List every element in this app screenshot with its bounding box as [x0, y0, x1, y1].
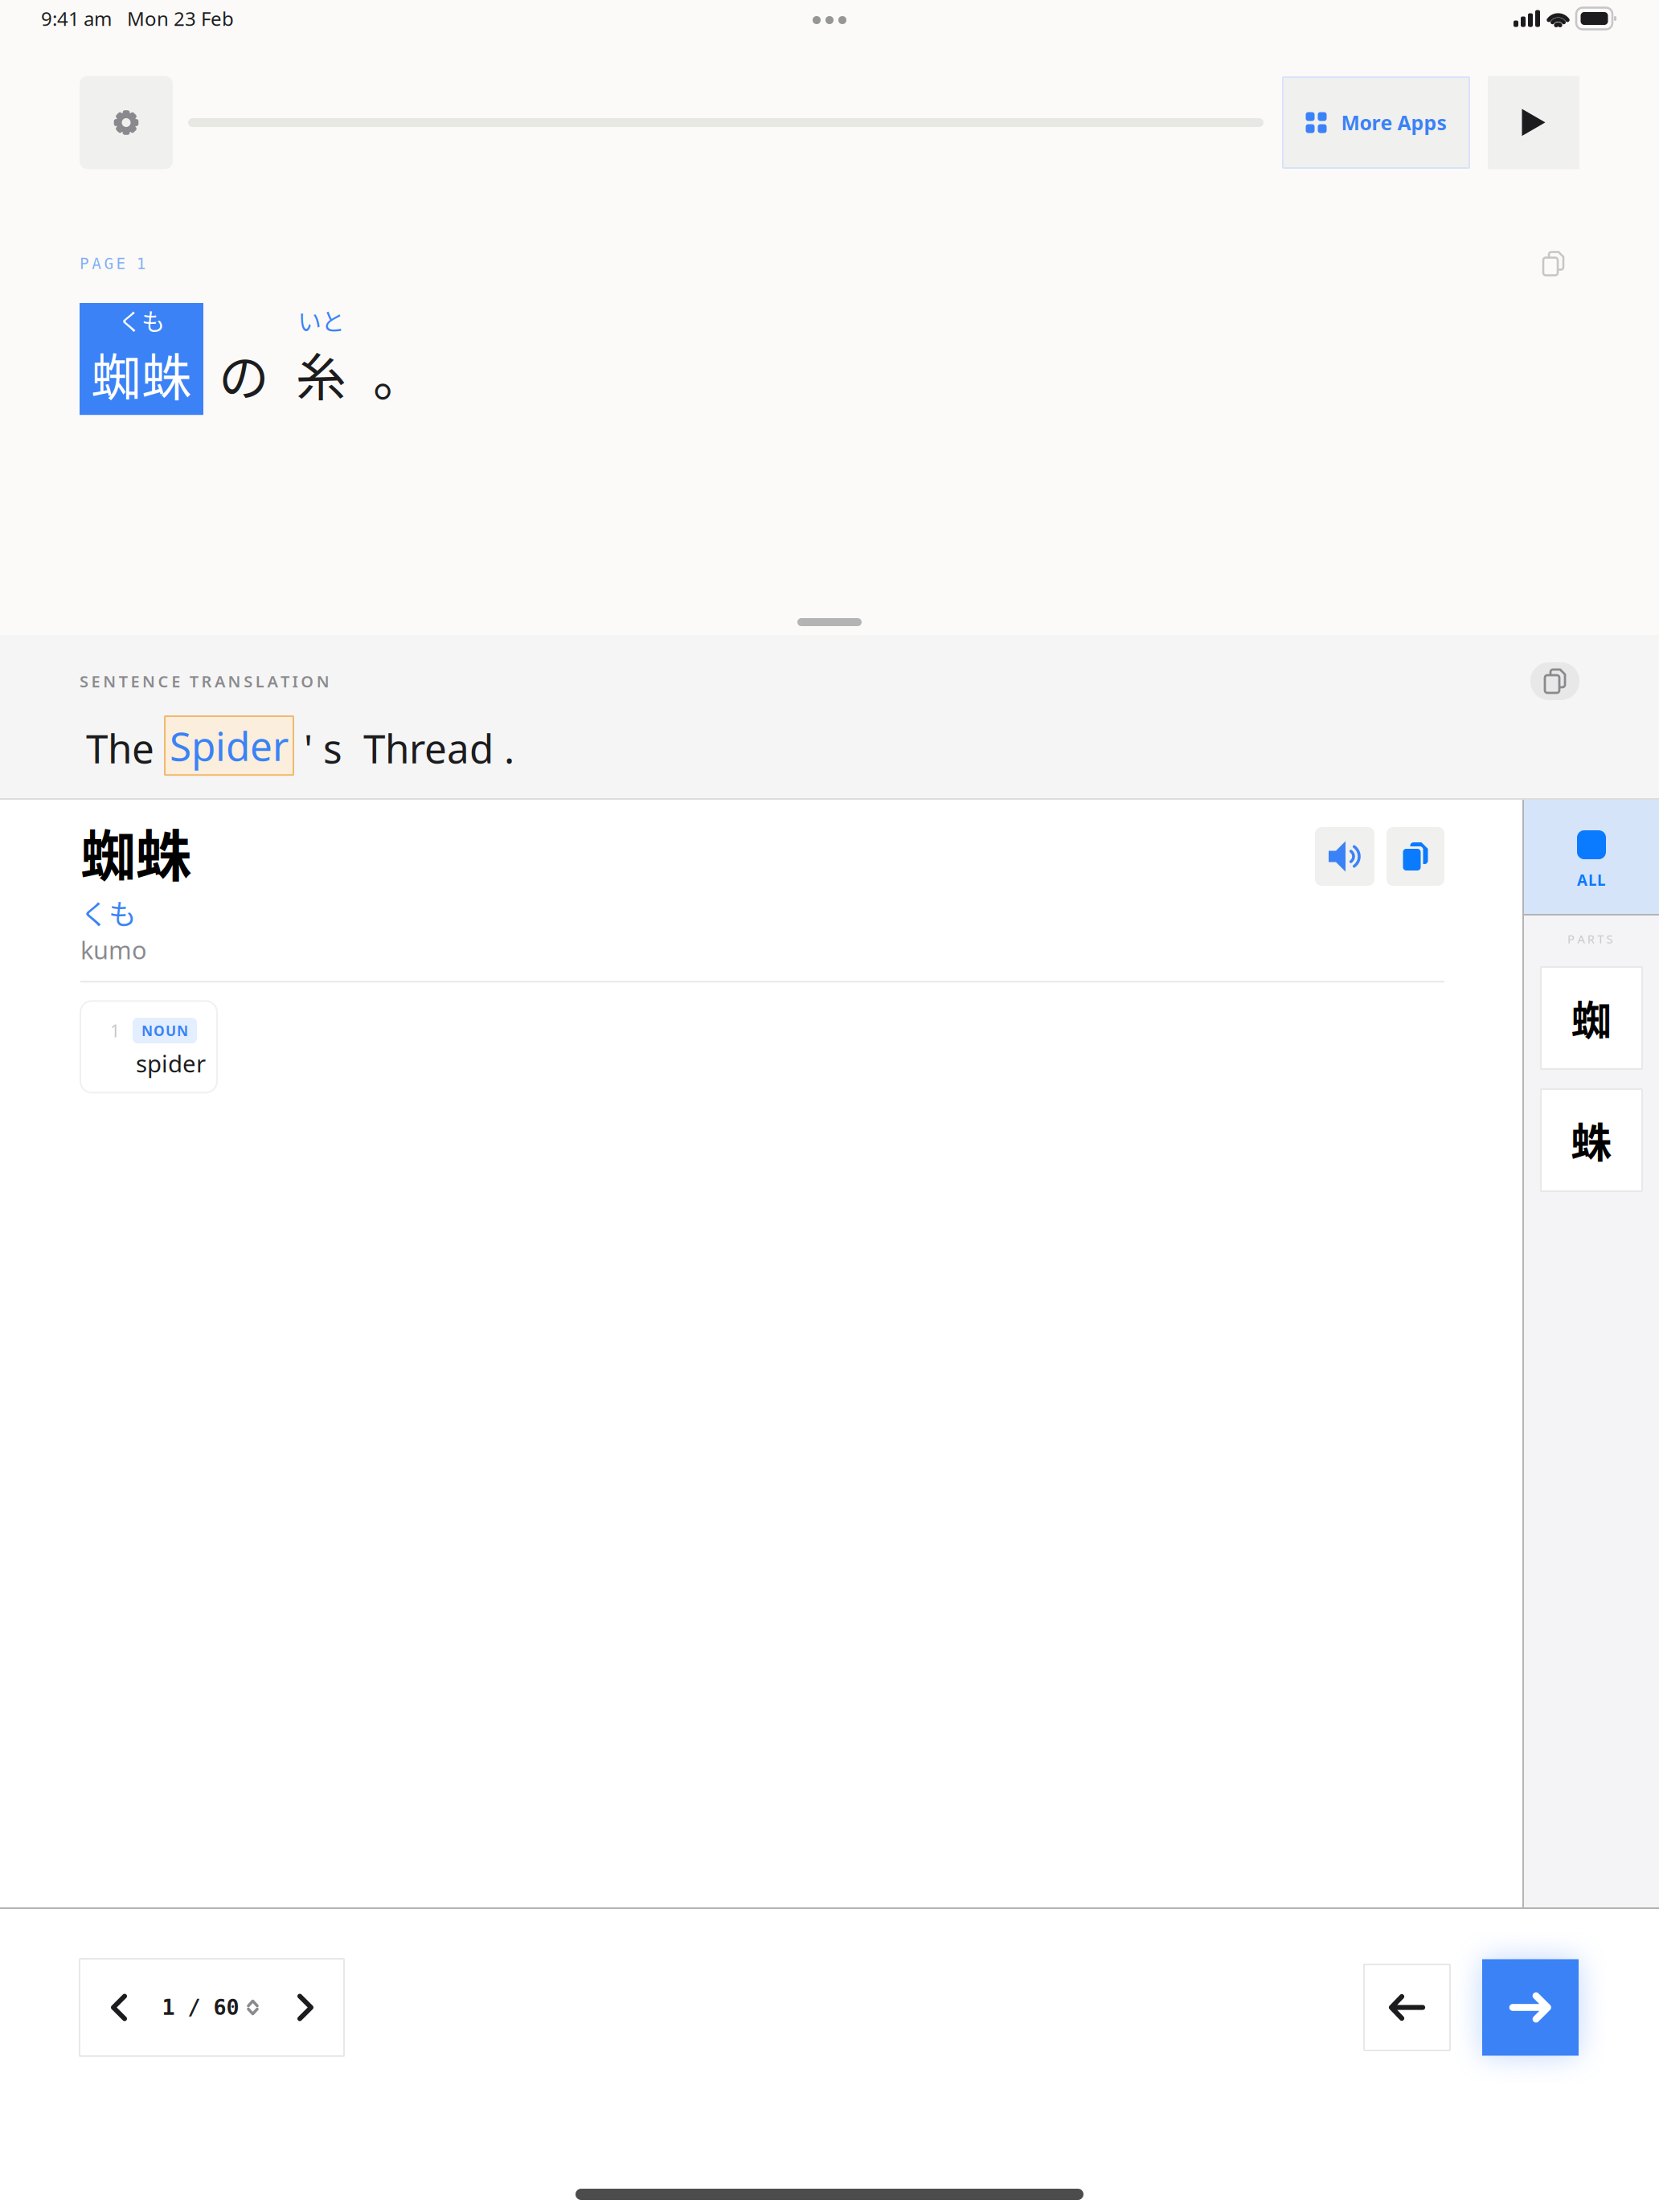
button[interactable]: Previous: [1364, 1964, 1450, 2050]
staticText: R: [201, 670, 212, 692]
staticText: 9:41: [41, 5, 80, 32]
button[interactable]: Copy sentence: [1527, 244, 1579, 284]
staticText: P: [1567, 931, 1575, 947]
staticText: くも: [80, 893, 137, 933]
staticText: N: [103, 670, 116, 692]
staticText: A: [215, 670, 225, 692]
staticText: N: [228, 670, 241, 692]
staticText: 蜘: [1571, 988, 1612, 1047]
staticText: Mon 23 Feb: [127, 5, 234, 32]
staticText: T: [190, 670, 198, 692]
staticText: L: [255, 670, 264, 692]
button[interactable]: いと: [285, 303, 358, 415]
button[interactable]: [362, 303, 435, 415]
staticText: C: [158, 670, 168, 692]
staticText: A: [267, 670, 278, 692]
staticText: E: [116, 255, 126, 273]
staticText: R: [1587, 931, 1595, 947]
staticText: 。: [373, 337, 424, 410]
button[interactable]: Copy translation: [1530, 662, 1579, 700]
staticText: T: [281, 670, 289, 692]
button[interactable]: More Apps: [1283, 77, 1469, 168]
button[interactable]: Copy word: [1387, 827, 1444, 886]
staticText: N: [177, 1021, 188, 1040]
button[interactable]: Next page: [281, 1959, 330, 2056]
staticText: N: [317, 670, 329, 692]
button[interactable]: Settings: [80, 76, 173, 169]
button[interactable]: Spider: [165, 716, 293, 775]
staticText: S: [80, 670, 88, 692]
staticText: L: [1597, 870, 1605, 890]
staticText: T: [119, 670, 128, 692]
staticText: O: [154, 1021, 165, 1040]
staticText: ' s Thread .: [293, 721, 514, 775]
staticText: 1: [110, 1019, 120, 1042]
staticText: S: [244, 670, 253, 692]
staticText: O: [301, 670, 314, 692]
button[interactable]: A: [1524, 800, 1659, 914]
button[interactable]: くも: [80, 303, 203, 415]
staticText: A: [92, 255, 101, 273]
staticText: いと: [298, 303, 344, 337]
staticText: kumo: [80, 933, 147, 966]
button[interactable]: Previous page: [95, 1959, 143, 2056]
button[interactable]: 蛛: [1541, 1089, 1642, 1191]
staticText: 蛛: [1571, 1111, 1612, 1170]
button[interactable]: Play audio: [1315, 827, 1374, 886]
staticText: E: [171, 670, 180, 692]
staticText: S: [1606, 931, 1613, 947]
button[interactable]: 蜘: [1541, 967, 1642, 1069]
staticText: A: [1577, 931, 1585, 947]
staticText: くも: [118, 303, 165, 337]
staticText: 1: [136, 255, 146, 273]
staticText: am: [84, 5, 112, 32]
staticText: N: [142, 670, 155, 692]
staticText: 蜘蛛: [80, 812, 191, 893]
staticText: E: [91, 670, 100, 692]
button[interactable]: [207, 303, 281, 415]
staticText: E: [131, 670, 139, 692]
staticText: More Apps: [1341, 109, 1446, 136]
staticText: L: [1588, 870, 1596, 890]
staticText: I: [292, 670, 298, 692]
staticText: N: [141, 1021, 153, 1040]
staticText: 糸: [296, 337, 346, 410]
staticText: The: [86, 721, 165, 775]
staticText: Spider: [170, 719, 289, 773]
staticText: U: [166, 1021, 176, 1040]
button[interactable]: Choose page: [247, 1999, 259, 2015]
staticText: A: [1577, 870, 1587, 890]
staticText: 1 / 60: [162, 1995, 239, 2020]
staticText: spider: [136, 1047, 206, 1079]
staticText: P: [80, 255, 89, 273]
staticText: の: [219, 337, 269, 410]
button[interactable]: Next: [1482, 1959, 1579, 2056]
staticText: T: [1597, 931, 1604, 947]
staticText: 蜘蛛: [91, 337, 192, 410]
staticText: G: [104, 255, 114, 273]
button[interactable]: Play: [1488, 76, 1579, 169]
